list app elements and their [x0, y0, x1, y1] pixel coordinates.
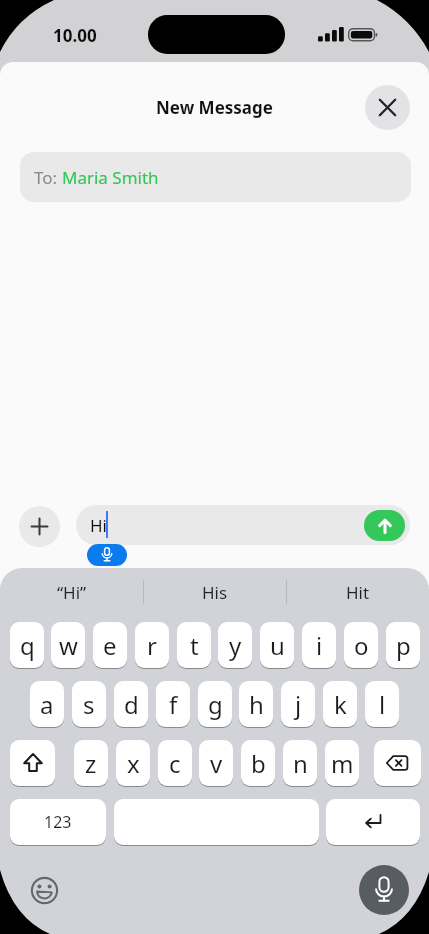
button[interactable]: a	[30, 681, 64, 727]
button[interactable]	[87, 544, 127, 566]
staticText: u	[270, 629, 285, 662]
button[interactable]: d	[114, 681, 148, 727]
staticText: b	[251, 747, 266, 780]
staticText: m	[331, 747, 354, 780]
button[interactable]: w	[51, 622, 85, 668]
staticText: g	[208, 688, 223, 721]
staticText: e	[103, 629, 117, 662]
staticText: His	[202, 581, 228, 604]
button[interactable]: r	[135, 622, 169, 668]
staticText: j	[295, 688, 302, 721]
staticText: Maria Smith	[62, 166, 159, 189]
staticText: y	[229, 629, 242, 662]
button[interactable]: o	[344, 622, 378, 668]
button[interactable]: “Hi”	[0, 579, 143, 605]
button[interactable]: b	[241, 740, 275, 786]
button[interactable]: s	[72, 681, 106, 727]
button[interactable]: z	[74, 740, 108, 786]
staticText: v	[210, 747, 223, 780]
staticText: a	[40, 688, 54, 721]
button[interactable]: To:	[20, 152, 411, 202]
staticText: x	[127, 747, 140, 780]
button[interactable]: Hit	[286, 579, 429, 605]
button[interactable]: h	[239, 681, 273, 727]
button[interactable]: t	[177, 622, 211, 668]
button[interactable]: j	[281, 681, 315, 727]
staticText: s	[83, 688, 95, 721]
button[interactable]	[374, 740, 421, 786]
button[interactable]: f	[156, 681, 190, 727]
button[interactable]: His	[143, 579, 286, 605]
button[interactable]: c	[158, 740, 192, 786]
button[interactable]	[364, 510, 405, 541]
staticText: Hit	[346, 581, 370, 604]
staticText: h	[249, 688, 264, 721]
button[interactable]: g	[198, 681, 232, 727]
staticText: f	[169, 688, 178, 721]
staticText: c	[169, 747, 181, 780]
button[interactable]: p	[386, 622, 420, 668]
staticText: k	[334, 688, 347, 721]
staticText: o	[354, 629, 369, 662]
button[interactable]	[10, 740, 55, 786]
staticText: p	[396, 629, 411, 662]
button[interactable]: u	[260, 622, 294, 668]
staticText: t	[190, 629, 199, 662]
staticText: New Message	[156, 96, 273, 118]
button[interactable]: e	[93, 622, 127, 668]
staticText: 123	[44, 811, 72, 833]
staticText: n	[293, 747, 308, 780]
button[interactable]: y	[218, 622, 252, 668]
button[interactable]: q	[10, 622, 44, 668]
button[interactable]: l	[365, 681, 399, 727]
staticText: w	[59, 629, 78, 662]
staticText: “Hi”	[57, 581, 87, 604]
button[interactable]	[114, 799, 319, 845]
staticText: To:	[34, 166, 62, 189]
button[interactable]: v	[199, 740, 233, 786]
button[interactable]: Hi	[76, 505, 410, 545]
staticText: l	[379, 688, 386, 721]
button[interactable]	[359, 865, 409, 915]
staticText: q	[20, 629, 35, 662]
button[interactable]: k	[323, 681, 357, 727]
button[interactable]: i	[302, 622, 336, 668]
staticText: Hi	[90, 514, 107, 537]
staticText: i	[316, 629, 323, 662]
staticText: r	[147, 629, 157, 662]
staticText: 10.00	[53, 24, 97, 46]
button[interactable]: x	[116, 740, 150, 786]
button[interactable]	[365, 85, 410, 130]
button[interactable]: m	[325, 740, 359, 786]
button[interactable]: 123	[10, 799, 106, 845]
button[interactable]	[326, 799, 420, 845]
staticText: z	[85, 747, 97, 780]
button[interactable]	[19, 506, 60, 547]
button[interactable]	[31, 877, 58, 904]
button[interactable]: n	[283, 740, 317, 786]
staticText: d	[124, 688, 139, 721]
